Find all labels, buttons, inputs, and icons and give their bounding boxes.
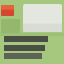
button[interactable]: App icon xyxy=(1,5,14,16)
button[interactable] xyxy=(23,4,62,32)
button[interactable] xyxy=(4,45,45,59)
